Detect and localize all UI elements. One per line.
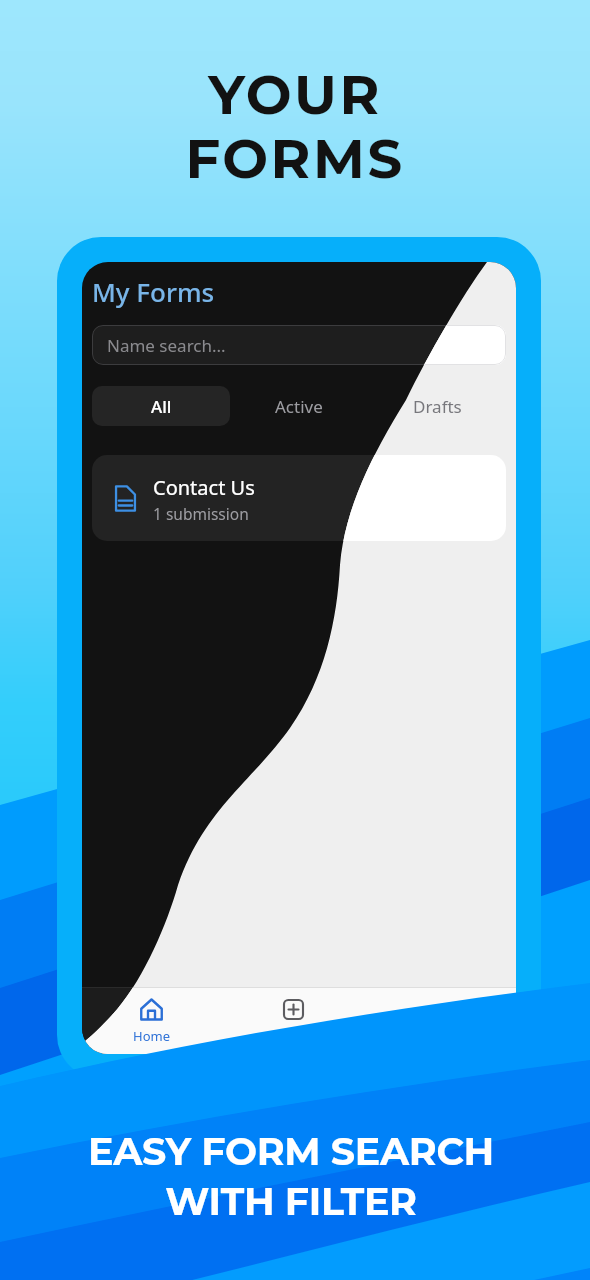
button[interactable]: Contact Us (92, 455, 506, 541)
staticText: 1 submission (153, 503, 249, 524)
staticText: FORMS (185, 125, 405, 191)
staticText: Contact Us (153, 474, 255, 501)
staticText: Create (273, 1027, 313, 1045)
staticText: Name search... (107, 334, 226, 357)
button[interactable]: Drafts (368, 386, 506, 426)
button[interactable]: All (92, 386, 230, 426)
staticText: EASY FORM SEARCH (88, 1128, 494, 1174)
staticText: Active (275, 395, 323, 418)
button[interactable]: Name search... (92, 325, 506, 365)
staticText: Create (273, 1027, 313, 1045)
staticText: My Forms (92, 274, 215, 309)
staticText: My Forms (92, 274, 215, 309)
button[interactable]: Name search... (92, 325, 506, 365)
button[interactable]: Drafts (368, 386, 506, 426)
button[interactable]: Home (106, 997, 196, 1040)
staticText: All (151, 395, 172, 418)
staticText: Name search... (107, 334, 226, 357)
staticText: Contact Us (153, 474, 255, 501)
button[interactable]: Saved (395, 997, 485, 1040)
button[interactable]: Home (106, 997, 196, 1040)
staticText: Active (275, 395, 323, 418)
staticText: YOUR (208, 61, 382, 127)
staticText: Home (133, 1027, 170, 1045)
staticText: WITH FILTER (165, 1178, 417, 1224)
button[interactable]: Contact Us (92, 455, 506, 541)
staticText: Home (133, 1027, 170, 1045)
button[interactable]: Active (230, 386, 368, 426)
button[interactable]: Saved (395, 997, 485, 1040)
button[interactable]: Active (230, 386, 368, 426)
button[interactable]: All (92, 386, 230, 426)
staticText: All (151, 395, 172, 418)
staticText: 1 submission (153, 503, 249, 524)
staticText: Drafts (413, 395, 462, 418)
staticText: Drafts (413, 395, 462, 418)
button[interactable]: Create (248, 997, 338, 1040)
button[interactable]: Create (248, 997, 338, 1040)
